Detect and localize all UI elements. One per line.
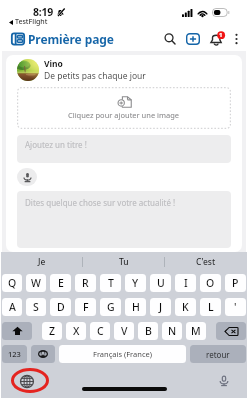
button[interactable]: Add <box>183 28 203 50</box>
staticText: Ajoutez un titre ! <box>25 139 87 150</box>
staticText: K <box>182 300 189 314</box>
staticText: TestFlight <box>15 17 48 27</box>
staticText: Première page <box>28 31 114 47</box>
button[interactable]: F <box>75 298 96 316</box>
staticText: 123 <box>8 349 21 359</box>
button[interactable]: Première page <box>11 31 114 47</box>
staticText: Q <box>8 276 17 290</box>
button[interactable]: ' <box>225 298 246 316</box>
button[interactable]: C'est <box>165 252 247 271</box>
button[interactable]: Y <box>125 274 146 292</box>
staticText: U <box>157 276 165 290</box>
staticText: Vino <box>44 58 63 70</box>
staticText: W <box>31 276 41 290</box>
staticText: 1 <box>219 31 223 39</box>
staticText: B <box>145 324 152 338</box>
button[interactable]: C <box>90 322 110 340</box>
button[interactable]: E <box>50 274 71 292</box>
button[interactable]: A <box>2 298 22 316</box>
button[interactable]: L <box>200 298 221 316</box>
button[interactable]: D <box>50 298 71 316</box>
staticText: Dites quelque chose sur votre actualité … <box>25 197 176 208</box>
button[interactable]: More options <box>228 28 244 50</box>
button[interactable]: G <box>100 298 121 316</box>
button[interactable]: Notifications <box>206 28 228 50</box>
staticText: E <box>58 276 64 290</box>
staticText: F <box>83 300 89 314</box>
button[interactable]: X <box>66 322 86 340</box>
button[interactable]: V <box>114 322 134 340</box>
button[interactable]: P <box>225 274 246 292</box>
button[interactable]: Ajoutez un titre ! <box>17 135 231 163</box>
button[interactable]: S <box>26 298 46 316</box>
button[interactable]: B <box>138 322 158 340</box>
button[interactable]: Change keyboard <box>20 374 34 388</box>
staticText: J <box>159 300 163 314</box>
button[interactable]: Tu <box>83 252 165 271</box>
button[interactable]: M <box>186 322 206 340</box>
button[interactable]: J <box>150 298 171 316</box>
button[interactable]: U <box>150 274 171 292</box>
button[interactable]: Français (France) <box>59 345 186 363</box>
staticText: Cliquez pour ajouter une image <box>68 110 180 120</box>
staticText: retour <box>206 349 230 360</box>
staticText: Y <box>132 276 139 290</box>
button[interactable]: Emoji <box>31 345 55 363</box>
button[interactable]: T <box>100 274 121 292</box>
button[interactable]: Shift <box>2 322 32 340</box>
button[interactable]: Dictation <box>217 374 231 388</box>
button[interactable]: H <box>125 298 146 316</box>
staticText: L <box>208 300 214 314</box>
staticText: Je <box>38 256 46 268</box>
button[interactable]: W <box>26 274 46 292</box>
staticText: D <box>57 300 65 314</box>
button[interactable]: I <box>175 274 196 292</box>
staticText: O <box>206 276 215 290</box>
button[interactable]: Z <box>42 322 62 340</box>
staticText: V <box>121 324 128 338</box>
button[interactable]: R <box>75 274 96 292</box>
staticText: P <box>232 276 239 290</box>
button[interactable]: Add an image <box>17 87 231 129</box>
staticText: Z <box>49 324 56 338</box>
button[interactable]: Voice input <box>17 168 37 186</box>
button[interactable]: Q <box>2 274 22 292</box>
staticText: Français (France) <box>93 349 152 359</box>
button[interactable]: retour <box>190 345 246 363</box>
button[interactable]: 123 <box>2 345 27 363</box>
staticText: S <box>33 300 39 314</box>
staticText: De petits pas chaque jour <box>44 70 146 82</box>
button[interactable]: N <box>162 322 182 340</box>
staticText: G <box>107 300 115 314</box>
staticText: X <box>73 324 80 338</box>
button[interactable]: Je <box>1 252 83 271</box>
staticText: C <box>97 324 104 338</box>
staticText: ' <box>234 300 237 314</box>
staticText: A <box>9 300 16 314</box>
staticText: Tu <box>119 256 129 268</box>
staticText: T <box>108 276 114 290</box>
button[interactable]: Search <box>160 28 180 50</box>
staticText: N <box>168 324 177 338</box>
button[interactable]: Dites quelque chose sur votre actualité … <box>17 191 231 248</box>
button[interactable]: Backspace <box>216 322 246 340</box>
button[interactable]: K <box>175 298 196 316</box>
staticText: R <box>82 276 89 290</box>
staticText: C'est <box>196 256 216 268</box>
staticText: I <box>184 276 188 290</box>
staticText: H <box>132 300 140 314</box>
button[interactable]: O <box>200 274 221 292</box>
staticText: 8:19 <box>33 5 54 19</box>
staticText: M <box>191 324 201 338</box>
